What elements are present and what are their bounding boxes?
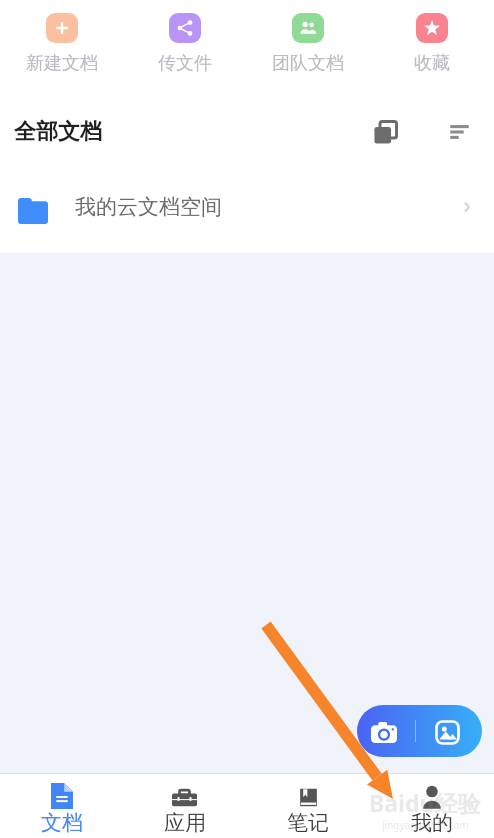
button[interactable]: 应用 [123, 774, 246, 838]
button[interactable]: 收藏 [370, 0, 494, 75]
button[interactable]: 笔记 [246, 774, 370, 838]
button[interactable]: 我的云文档空间 [0, 178, 494, 236]
staticText: 文档 [41, 810, 83, 836]
staticText: 我的云文档空间 [75, 194, 222, 220]
staticText: jingyan.baidu.com [382, 818, 469, 832]
staticText: 收藏 [414, 52, 450, 75]
button[interactable]: 团队文档 [246, 0, 370, 75]
button[interactable]: Pick from gallery [416, 705, 482, 757]
button[interactable]: More options [442, 115, 476, 149]
staticText: 应用 [164, 810, 206, 836]
staticText: 笔记 [287, 810, 329, 836]
staticText: 团队文档 [272, 52, 344, 75]
staticText: 传文件 [158, 52, 212, 75]
staticText: 我的 [411, 810, 453, 836]
staticText: Baidu经验 [369, 787, 481, 818]
button[interactable]: 我的 [370, 774, 494, 838]
button[interactable]: 传文件 [123, 0, 246, 75]
button[interactable]: 文档 [0, 774, 123, 838]
button[interactable]: 新建文档 [0, 0, 123, 75]
staticText: 全部文档 [14, 118, 102, 146]
staticText: 新建文档 [26, 52, 98, 75]
button[interactable]: Scan with camera [357, 705, 415, 757]
button[interactable]: Multi-select [368, 115, 402, 149]
